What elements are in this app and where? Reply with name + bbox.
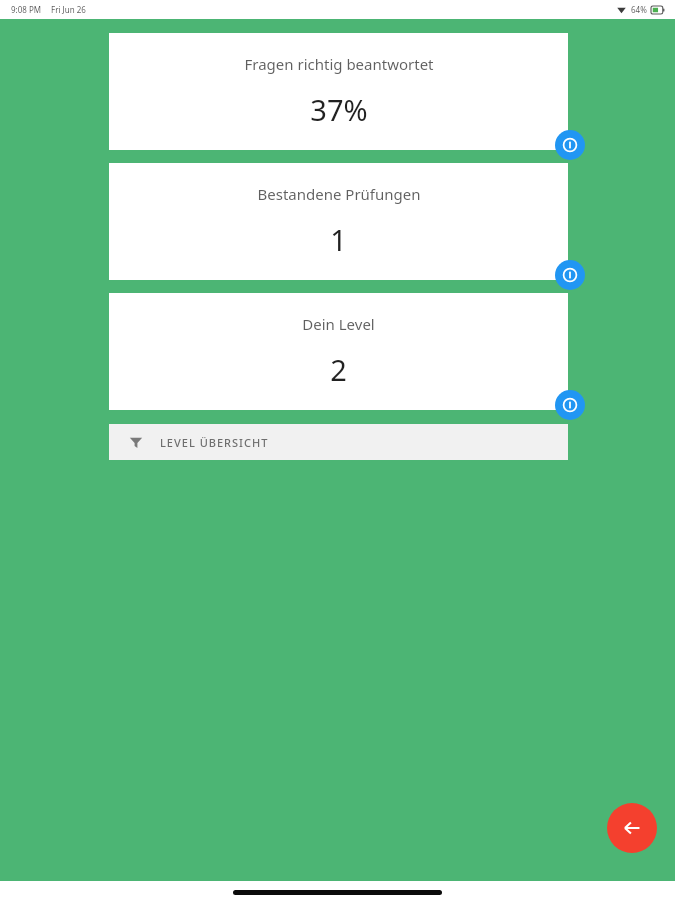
staticText: 2 — [330, 350, 347, 389]
staticText: 64% — [631, 4, 647, 15]
button[interactable]: Dein Level — [109, 293, 568, 410]
button[interactable]: Info — [555, 390, 585, 420]
staticText: Fri Jun 26 — [51, 4, 86, 15]
button[interactable]: Info — [555, 260, 585, 290]
staticText: 1 — [330, 220, 347, 259]
staticText: 9:08 PM — [11, 4, 42, 15]
staticText: Fragen richtig beantwortet — [244, 54, 434, 74]
staticText: Bestandene Prüfungen — [257, 184, 421, 204]
staticText: 37% — [310, 90, 368, 129]
staticText: Dein Level — [302, 314, 375, 334]
button[interactable]: Bestandene Prüfungen — [109, 163, 568, 280]
button[interactable]: LEVEL ÜBERSICHT — [109, 424, 568, 460]
button[interactable]: Fragen richtig beantwortet — [109, 33, 568, 150]
button[interactable]: Info — [555, 130, 585, 160]
staticText: LEVEL ÜBERSICHT — [160, 435, 269, 450]
button[interactable]: Back — [607, 803, 657, 853]
